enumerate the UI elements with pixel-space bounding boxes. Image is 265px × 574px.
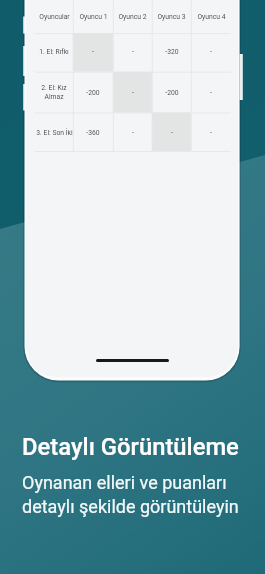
button[interactable]: - bbox=[113, 113, 152, 152]
button[interactable]: Oyuncu 1 bbox=[73, 0, 113, 33]
staticText: Oyuncu 4 bbox=[197, 13, 226, 21]
button[interactable]: -320 bbox=[152, 33, 191, 71]
button[interactable]: -200 bbox=[152, 72, 191, 113]
button[interactable]: - bbox=[191, 113, 231, 152]
staticText: - bbox=[132, 129, 134, 137]
staticText: Oyuncular bbox=[39, 13, 70, 21]
staticText: Oyuncu 1 bbox=[79, 13, 108, 21]
button[interactable]: Oyuncu 2 bbox=[113, 0, 152, 33]
button[interactable]: -200 bbox=[73, 72, 113, 113]
button[interactable]: - bbox=[191, 33, 231, 71]
staticText: - bbox=[92, 48, 94, 56]
staticText: Oyuncu 2 bbox=[118, 13, 147, 21]
staticText: - bbox=[210, 129, 212, 137]
staticText: -360 bbox=[86, 129, 100, 137]
button[interactable]: 1. El: Rıfkı bbox=[35, 33, 73, 71]
staticText: -320 bbox=[165, 48, 179, 56]
staticText: - bbox=[132, 48, 134, 56]
button[interactable]: Oyuncu 3 bbox=[152, 0, 191, 33]
staticText: Oyuncu 3 bbox=[157, 13, 186, 21]
staticText: - bbox=[210, 48, 212, 56]
staticText: - bbox=[210, 89, 212, 97]
staticText: -200 bbox=[165, 89, 179, 97]
staticText: Detaylı Görüntüleme bbox=[22, 433, 239, 461]
button[interactable]: -360 bbox=[73, 113, 113, 152]
staticText: Oynanan elleri ve puanları detaylı şekil… bbox=[22, 472, 239, 517]
staticText: - bbox=[132, 89, 134, 97]
button[interactable]: - bbox=[191, 72, 231, 113]
button[interactable]: Oyuncu 4 bbox=[191, 0, 231, 33]
staticText: 3. El: Son İki bbox=[36, 129, 73, 137]
button[interactable]: 3. El: Son İki bbox=[35, 113, 73, 152]
staticText: 2. El: Kız Almaz bbox=[41, 84, 67, 101]
button[interactable]: - bbox=[113, 33, 152, 71]
staticText: - bbox=[171, 129, 173, 137]
staticText: 1. El: Rıfkı bbox=[39, 48, 69, 56]
button[interactable]: 2. El: Kız Almaz bbox=[35, 72, 73, 113]
staticText: -200 bbox=[86, 89, 100, 97]
button[interactable]: Oyuncular bbox=[35, 0, 73, 33]
